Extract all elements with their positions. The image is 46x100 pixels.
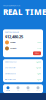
staticText: Tesla Mtr [10,47,17,49]
button[interactable]: Home [3,86,13,91]
staticText: SELL [35,52,39,54]
staticText: +1.1% [37,47,41,49]
button[interactable]: Wallet [23,86,33,91]
button[interactable]: Stats [13,86,23,91]
staticText: +2.4% [37,41,41,43]
staticText: +$320 [36,61,41,63]
staticText: Apple Inc [10,41,16,43]
staticText: Stats [16,89,19,91]
button[interactable]: Tesla Mtr [3,45,43,51]
button[interactable]: More [33,86,43,91]
staticText: Home [6,89,10,91]
staticText: +$14 [37,78,41,80]
staticText: REAL TIME [3,7,46,17]
staticText: More [36,89,40,91]
staticText: +$96 [37,73,41,74]
staticText: $12,480.25 [5,34,23,39]
button[interactable]: Share transfer [3,65,43,71]
staticText: TRACK YOUR PROFIT IN [3,5,20,7]
staticText: +$128 [36,67,41,69]
button[interactable]: Apple Inc [3,39,43,45]
staticText: Share transfer [5,67,16,69]
button[interactable]: Dividend payout [3,59,43,65]
staticText: Monthly deposit [5,73,15,74]
staticText: Wallet [26,89,29,91]
button[interactable]: Interest earned [3,76,43,82]
button[interactable]: Monthly deposit [3,71,43,76]
staticText: Interest earned [5,78,16,80]
button[interactable]: SELL [33,51,41,55]
staticText: Dividend payout [5,61,16,63]
staticText: PORTFOLIO VALUE [5,31,19,33]
